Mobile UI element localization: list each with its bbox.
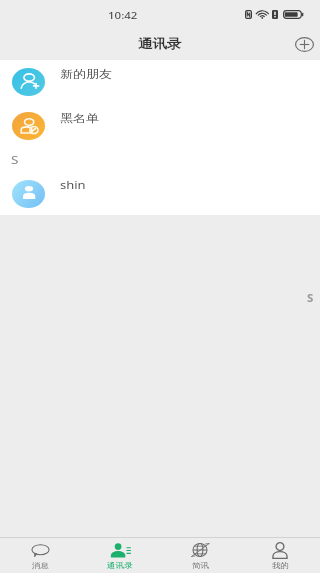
staticText: 简讯	[192, 561, 209, 570]
button[interactable]: shin	[0, 172, 320, 216]
button[interactable]: 我的	[244, 537, 316, 573]
staticText: 10:42	[108, 9, 138, 23]
staticText: 消息	[32, 561, 49, 570]
button[interactable]: 消息	[4, 537, 76, 573]
button[interactable]: Add contact	[293, 33, 315, 55]
button[interactable]: S	[304, 291, 317, 304]
staticText: 黑名单	[60, 111, 99, 125]
staticText: 通讯录	[107, 561, 133, 570]
button[interactable]: 简讯	[164, 537, 236, 573]
staticText: S	[307, 292, 314, 303]
button[interactable]: 黑名单	[0, 104, 320, 148]
staticText: shin	[60, 177, 86, 192]
staticText: 我的	[272, 561, 289, 570]
staticText: 通讯录	[138, 36, 182, 51]
staticText: S	[11, 152, 19, 167]
button[interactable]: 新的朋友	[0, 60, 320, 104]
staticText: 新的朋友	[60, 67, 112, 81]
button[interactable]: 通讯录	[84, 537, 156, 573]
